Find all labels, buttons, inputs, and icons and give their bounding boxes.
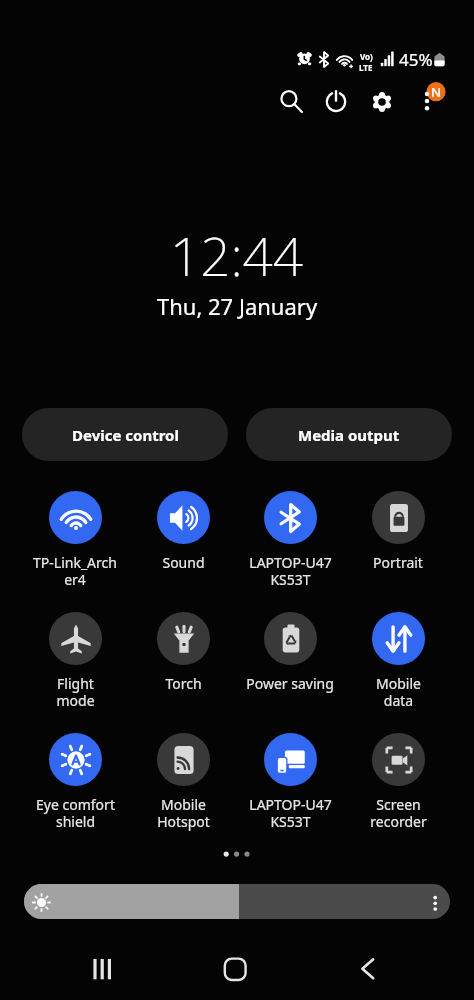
button[interactable]: Mobile Hotspot: [130, 733, 236, 831]
staticText: Media output: [298, 425, 400, 445]
staticText: Device control: [72, 425, 179, 445]
staticText: Thu, 27 January: [157, 291, 318, 321]
button[interactable]: Brightness: [24, 884, 450, 919]
staticText: Screen recorder: [370, 795, 427, 831]
button[interactable]: Recents: [86, 955, 120, 989]
staticText: Portrait: [373, 553, 423, 572]
staticText: LAPTOP-U47 KS53T: [249, 795, 332, 831]
staticText: Mobile data: [376, 674, 421, 710]
staticText: TP-Link_Arch er4: [33, 553, 117, 589]
button[interactable]: Power saving: [237, 612, 343, 693]
button[interactable]: Eye comfort shield: [22, 733, 128, 831]
button[interactable]: Flight mode: [22, 612, 128, 710]
button[interactable]: Back: [351, 955, 385, 989]
button[interactable]: TP-Link_Arch er4: [22, 491, 128, 589]
button[interactable]: Portrait: [345, 491, 451, 572]
button[interactable]: Sound: [130, 491, 236, 572]
staticText: Sound: [162, 553, 205, 572]
button[interactable]: Home: [218, 955, 252, 989]
staticText: Flight mode: [56, 674, 95, 710]
staticText: Eye comfort shield: [36, 795, 115, 831]
button[interactable]: Settings: [360, 80, 404, 124]
staticText: 12:44: [170, 219, 304, 291]
button[interactable]: Torch: [130, 612, 236, 693]
button[interactable]: More options: [405, 79, 449, 123]
button[interactable]: LAPTOP-U47 KS53T: [237, 491, 343, 589]
button[interactable]: Device control: [22, 408, 228, 461]
button[interactable]: Power off: [314, 79, 358, 123]
staticText: N: [431, 83, 442, 101]
staticText: LTE: [359, 62, 373, 73]
button[interactable]: Media output: [246, 408, 452, 461]
button[interactable]: LAPTOP-U47 KS53T: [237, 733, 343, 831]
staticText: LAPTOP-U47 KS53T: [249, 553, 332, 589]
staticText: 45%: [399, 48, 433, 71]
button[interactable]: Search: [269, 79, 313, 123]
button[interactable]: Screen recorder: [345, 733, 451, 831]
staticText: Vo): [360, 51, 373, 62]
staticText: Mobile Hotspot: [157, 795, 210, 831]
button[interactable]: Mobile data: [345, 612, 451, 710]
staticText: Power saving: [246, 674, 334, 693]
staticText: Torch: [165, 674, 202, 693]
